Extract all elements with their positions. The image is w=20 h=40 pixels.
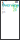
staticText: ıll	[15, 0, 18, 4]
staticText: 8,420	[13, 5, 18, 12]
staticText: 9:41	[2, 0, 7, 6]
staticText: Steps	[2, 3, 5, 14]
staticText: Overview	[1, 2, 18, 8]
